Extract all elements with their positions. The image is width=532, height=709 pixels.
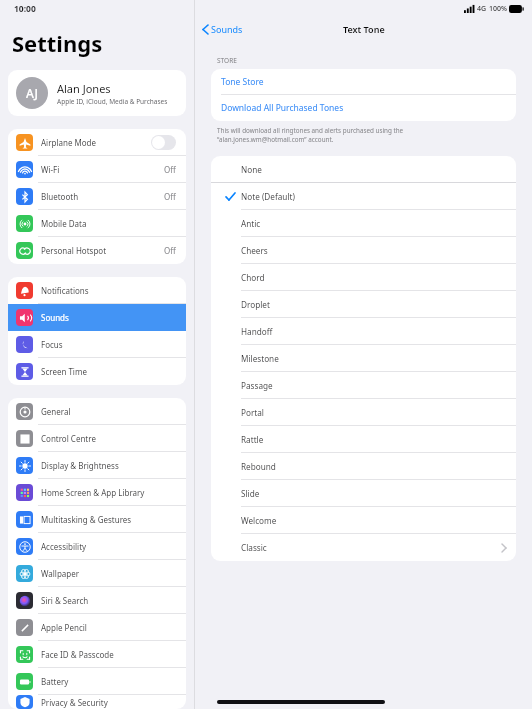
staticText: None bbox=[241, 164, 262, 175]
staticText: Battery bbox=[41, 676, 69, 687]
staticText: Milestone bbox=[241, 353, 279, 364]
button[interactable]: Milestone bbox=[211, 345, 516, 372]
button[interactable]: Screen Time bbox=[8, 358, 186, 385]
button[interactable]: None bbox=[211, 156, 516, 183]
button[interactable]: Multitasking & Gestures bbox=[8, 506, 186, 533]
button[interactable]: Wi-Fi bbox=[8, 156, 186, 183]
button[interactable]: Apple Pencil bbox=[8, 614, 186, 641]
staticText: Passage bbox=[241, 380, 273, 391]
staticText: Wallpaper bbox=[41, 568, 80, 579]
button[interactable]: Airplane Mode bbox=[8, 129, 186, 156]
button[interactable]: Mobile Data bbox=[8, 210, 186, 237]
button[interactable]: Siri & Search bbox=[8, 587, 186, 614]
button[interactable]: Droplet bbox=[211, 291, 516, 318]
button[interactable]: Battery bbox=[8, 668, 186, 695]
staticText: Download All Purchased Tones bbox=[221, 102, 344, 114]
staticText: 10:00 bbox=[14, 3, 36, 15]
button[interactable]: Display & Brightness bbox=[8, 452, 186, 479]
button[interactable]: Antic bbox=[211, 210, 516, 237]
staticText: Home Screen & App Library bbox=[41, 487, 145, 498]
staticText: Sounds bbox=[211, 23, 243, 35]
staticText: “alan.jones.wm@hotmail.com” account. bbox=[217, 135, 334, 144]
staticText: Cheers bbox=[241, 245, 268, 256]
staticText: 100% bbox=[489, 4, 507, 14]
staticText: STORE bbox=[217, 56, 237, 65]
staticText: Siri & Search bbox=[41, 595, 89, 606]
staticText: Tone Store bbox=[221, 76, 264, 88]
staticText: Airplane Mode bbox=[41, 137, 97, 148]
button[interactable]: Note (Default) bbox=[211, 183, 516, 210]
staticText: This will download all ringtones and ale… bbox=[217, 126, 404, 135]
button[interactable]: Privacy & Security bbox=[8, 695, 186, 709]
staticText: Antic bbox=[241, 218, 261, 229]
button[interactable]: AJ bbox=[8, 70, 186, 116]
button[interactable]: Passage bbox=[211, 372, 516, 399]
staticText: Sounds bbox=[41, 312, 69, 323]
staticText: AJ bbox=[26, 85, 38, 101]
staticText: Face ID & Passcode bbox=[41, 649, 114, 660]
staticText: Text Tone bbox=[343, 23, 385, 35]
staticText: Droplet bbox=[241, 299, 270, 310]
staticText: Mobile Data bbox=[41, 218, 87, 229]
button[interactable]: Focus bbox=[8, 331, 186, 358]
staticText: Off bbox=[164, 164, 176, 175]
button[interactable]: Cheers bbox=[211, 237, 516, 264]
button[interactable]: Slide bbox=[211, 480, 516, 507]
staticText: Display & Brightness bbox=[41, 460, 119, 471]
staticText: Accessibility bbox=[41, 541, 87, 552]
staticText: Personal Hotspot bbox=[41, 245, 107, 256]
staticText: Off bbox=[164, 191, 176, 202]
button[interactable]: Rebound bbox=[211, 453, 516, 480]
staticText: Notifications bbox=[41, 285, 89, 296]
button[interactable]: Welcome bbox=[211, 507, 516, 534]
staticText: Apple ID, iCloud, Media & Purchases bbox=[57, 97, 168, 106]
staticText: 4G bbox=[477, 4, 487, 14]
staticText: Rattle bbox=[241, 434, 264, 445]
staticText: Off bbox=[164, 245, 176, 256]
staticText: Screen Time bbox=[41, 366, 87, 377]
staticText: Apple Pencil bbox=[41, 622, 87, 633]
button[interactable]: Rattle bbox=[211, 426, 516, 453]
staticText: Welcome bbox=[241, 515, 277, 526]
staticText: Privacy & Security bbox=[41, 697, 108, 708]
staticText: Classic bbox=[241, 542, 267, 553]
button[interactable]: Accessibility bbox=[8, 533, 186, 560]
button[interactable]: Sounds bbox=[8, 304, 186, 331]
staticText: Portal bbox=[241, 407, 264, 418]
button[interactable]: Control Centre bbox=[8, 425, 186, 452]
button[interactable]: Face ID & Passcode bbox=[8, 641, 186, 668]
staticText: Note (Default) bbox=[241, 191, 295, 202]
button[interactable]: Bluetooth bbox=[8, 183, 186, 210]
button[interactable]: Notifications bbox=[8, 277, 186, 304]
button[interactable]: Sounds bbox=[195, 21, 249, 37]
button[interactable]: Portal bbox=[211, 399, 516, 426]
button[interactable]: General bbox=[8, 398, 186, 425]
staticText: General bbox=[41, 406, 71, 417]
button[interactable]: Tone Store bbox=[211, 69, 516, 95]
staticText: Chord bbox=[241, 272, 265, 283]
staticText: Handoff bbox=[241, 326, 273, 337]
button[interactable]: Download All Purchased Tones bbox=[211, 95, 516, 121]
button[interactable]: Personal Hotspot bbox=[8, 237, 186, 264]
staticText: Slide bbox=[241, 488, 260, 499]
staticText: Alan Jones bbox=[57, 81, 111, 96]
button[interactable]: Home Screen & App Library bbox=[8, 479, 186, 506]
button[interactable]: Airplane Mode toggle bbox=[151, 135, 176, 150]
button[interactable]: Chord bbox=[211, 264, 516, 291]
staticText: Wi-Fi bbox=[41, 164, 60, 175]
staticText: Settings bbox=[12, 28, 103, 58]
button[interactable]: Wallpaper bbox=[8, 560, 186, 587]
staticText: Multitasking & Gestures bbox=[41, 514, 132, 525]
staticText: Control Centre bbox=[41, 433, 96, 444]
staticText: Focus bbox=[41, 339, 63, 350]
button[interactable]: Classic bbox=[211, 534, 516, 561]
staticText: Bluetooth bbox=[41, 191, 79, 202]
staticText: Rebound bbox=[241, 461, 276, 472]
button[interactable]: Handoff bbox=[211, 318, 516, 345]
